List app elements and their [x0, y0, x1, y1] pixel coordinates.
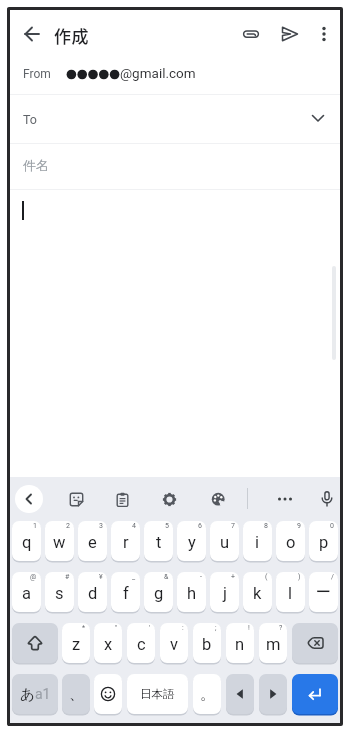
button[interactable]: x	[94, 623, 122, 663]
staticText: c	[137, 635, 146, 654]
staticText: 5	[165, 522, 169, 530]
staticText: )	[298, 573, 301, 581]
staticText: 8	[264, 522, 268, 530]
button[interactable]: w	[45, 521, 74, 561]
button[interactable]: i	[243, 521, 272, 561]
button[interactable]: To	[10, 95, 340, 143]
button[interactable]: l	[276, 572, 305, 612]
button[interactable]: g	[144, 572, 173, 612]
staticText: z	[72, 635, 81, 654]
button[interactable]: y	[177, 521, 206, 561]
staticText: (	[265, 573, 268, 581]
staticText: ;	[215, 624, 217, 632]
staticText: +	[231, 573, 235, 581]
button[interactable]: 件名	[10, 144, 340, 189]
staticText: 1	[33, 522, 37, 530]
button[interactable]	[20, 22, 44, 46]
button[interactable]: n	[226, 623, 254, 663]
staticText: -	[200, 573, 202, 581]
button[interactable]: t	[144, 521, 173, 561]
staticText: ー	[316, 583, 331, 602]
button[interactable]	[157, 487, 181, 511]
staticText: v	[170, 635, 178, 654]
button[interactable]: 。	[193, 674, 221, 714]
button[interactable]	[239, 22, 263, 46]
button[interactable]: q	[12, 521, 41, 561]
button[interactable]	[206, 487, 230, 511]
button[interactable]: v	[160, 623, 188, 663]
button[interactable]: r	[111, 521, 140, 561]
button[interactable]	[64, 487, 88, 511]
staticText: o	[286, 533, 296, 552]
staticText: n	[235, 635, 245, 654]
staticText: 2	[66, 522, 70, 530]
button[interactable]: c	[127, 623, 155, 663]
staticText: 件名	[23, 157, 49, 173]
staticText: /	[331, 573, 334, 581]
button[interactable]: u	[210, 521, 239, 561]
button[interactable]: a	[12, 572, 41, 612]
button[interactable]	[94, 674, 122, 714]
staticText: g	[154, 584, 164, 603]
staticText: !	[248, 624, 250, 632]
staticText: l	[288, 584, 293, 603]
staticText: 0	[330, 522, 334, 530]
button[interactable]: m	[259, 623, 287, 663]
button[interactable]	[273, 487, 297, 511]
button[interactable]: h	[177, 572, 206, 612]
button[interactable]: b	[193, 623, 221, 663]
staticText: u	[220, 533, 230, 552]
button[interactable]: 日本語	[127, 674, 188, 714]
button[interactable]	[10, 190, 340, 477]
staticText: 作成	[54, 23, 89, 48]
button[interactable]	[292, 674, 338, 714]
button[interactable]: p	[309, 521, 338, 561]
staticText: *	[82, 624, 86, 632]
button[interactable]: e	[78, 521, 107, 561]
button[interactable]: あ	[12, 674, 58, 714]
staticText: ?	[279, 624, 283, 632]
staticText: :	[182, 624, 184, 632]
staticText: 3	[99, 522, 103, 530]
staticText: i	[255, 533, 260, 552]
button[interactable]	[315, 487, 339, 511]
staticText: e	[88, 533, 97, 552]
button[interactable]: j	[210, 572, 239, 612]
staticText: &	[164, 573, 169, 581]
button[interactable]: z	[62, 623, 90, 663]
staticText: s	[55, 584, 64, 603]
button[interactable]: d	[78, 572, 107, 612]
staticText: x	[104, 635, 113, 654]
button[interactable]: o	[276, 521, 305, 561]
staticText: 4	[132, 522, 136, 530]
button[interactable]	[292, 623, 338, 663]
button[interactable]: f	[111, 572, 140, 612]
staticText: w	[53, 533, 66, 552]
staticText: m	[266, 635, 281, 654]
button[interactable]: s	[45, 572, 74, 612]
staticText: 。	[200, 685, 215, 704]
staticText: d	[88, 584, 98, 603]
button[interactable]	[12, 623, 58, 663]
button[interactable]	[226, 674, 254, 714]
staticText: ¥	[99, 573, 103, 581]
button[interactable]: ー	[309, 572, 338, 612]
staticText: From	[23, 67, 51, 81]
staticText: @	[30, 573, 37, 581]
staticText: 日本語	[140, 687, 175, 701]
button[interactable]: k	[243, 572, 272, 612]
button[interactable]	[259, 674, 287, 714]
button[interactable]	[15, 485, 43, 513]
staticText: j	[223, 584, 227, 603]
button[interactable]: 、	[62, 674, 90, 714]
button[interactable]	[312, 22, 336, 46]
button[interactable]	[110, 487, 134, 511]
staticText: q	[22, 533, 32, 552]
button[interactable]: From	[10, 55, 340, 94]
staticText: a1	[35, 686, 51, 702]
staticText: あ	[20, 685, 35, 703]
staticText: b	[202, 635, 212, 654]
staticText: 、	[69, 685, 84, 704]
button[interactable]	[278, 22, 302, 46]
staticText: k	[253, 584, 262, 603]
